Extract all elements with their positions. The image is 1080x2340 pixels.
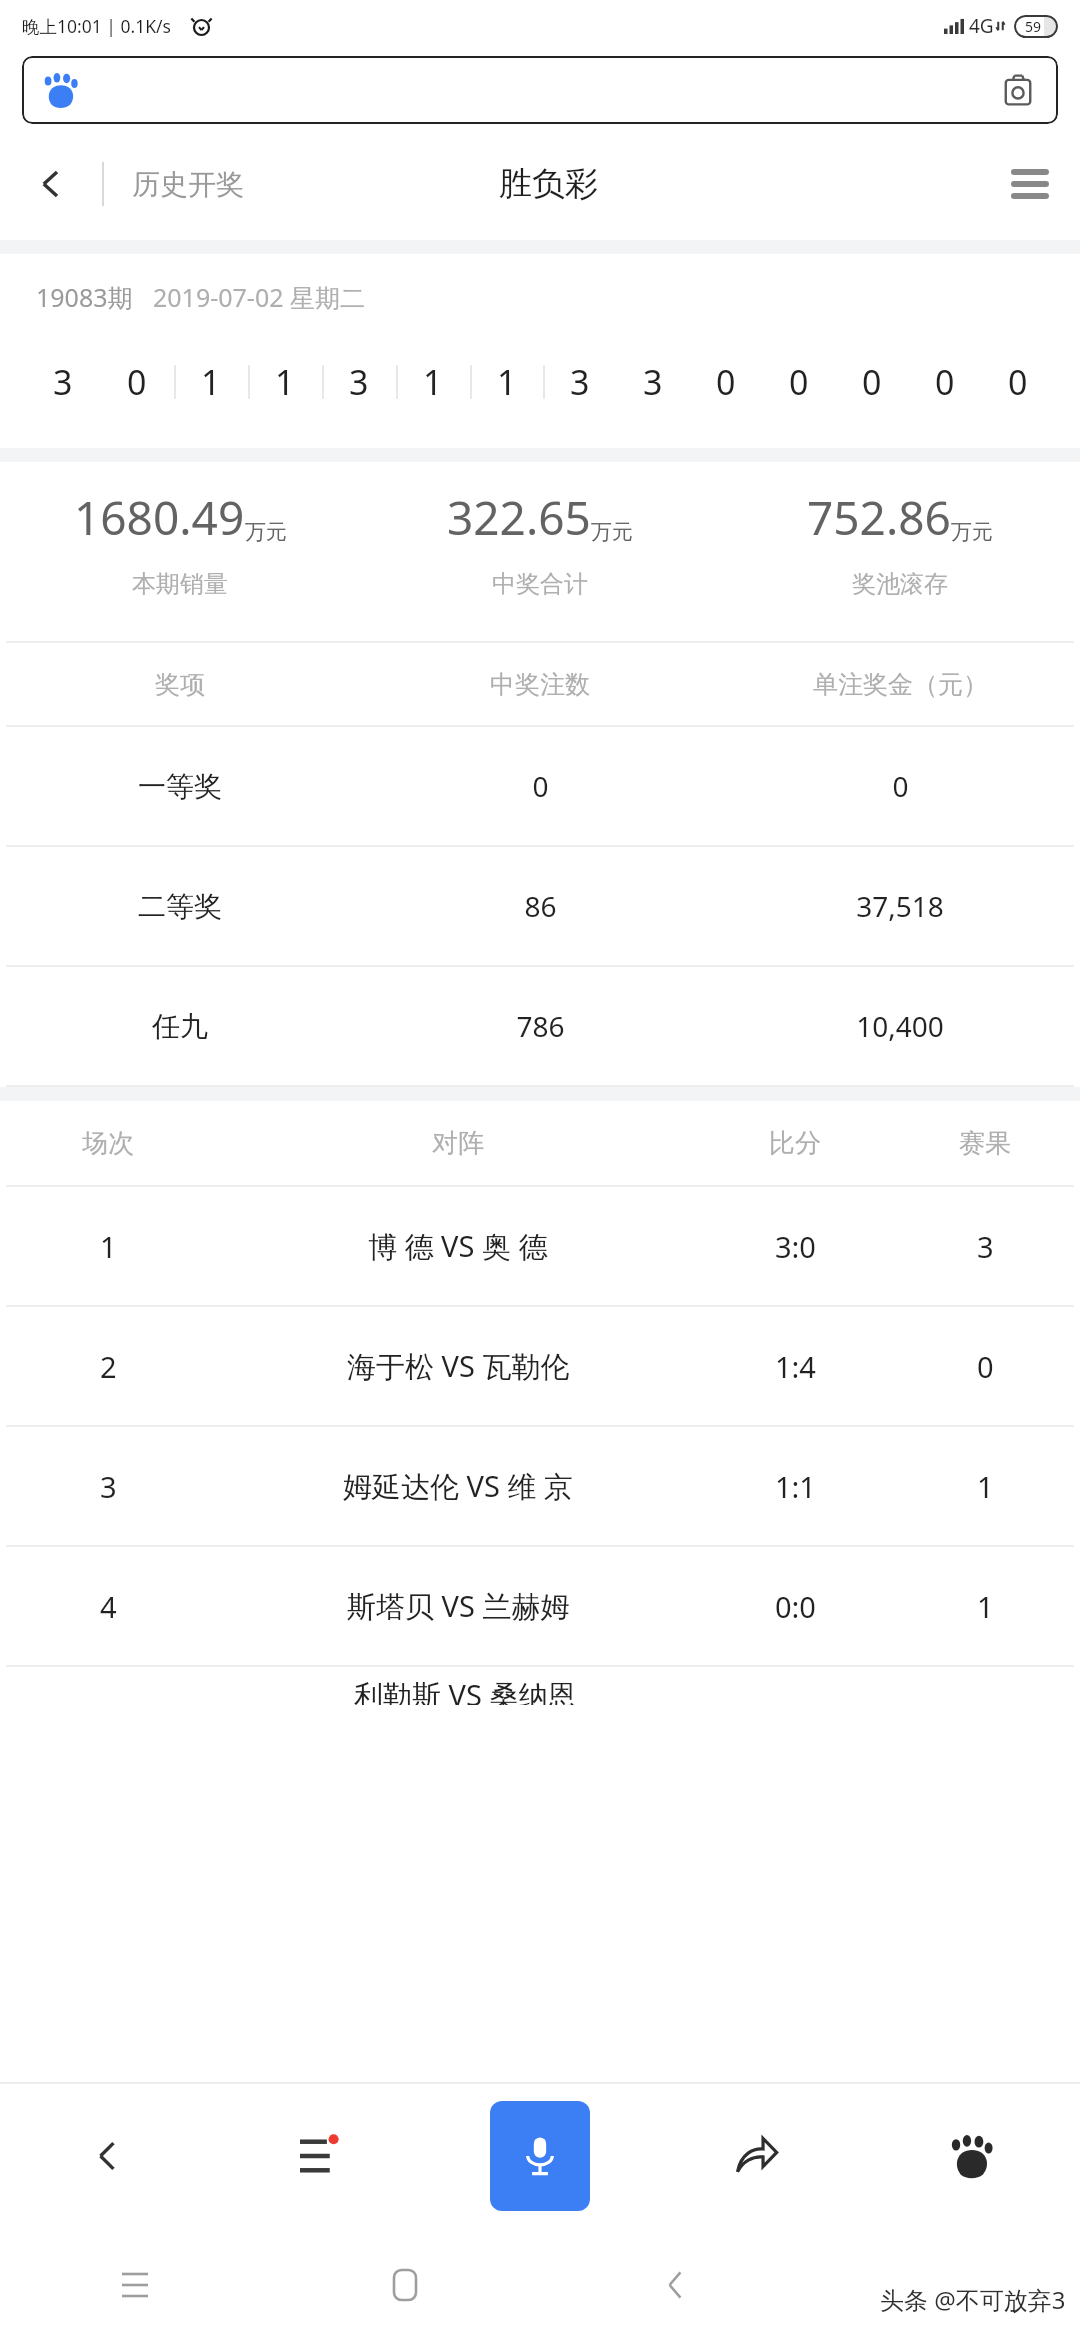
button[interactable]: 322.65 bbox=[360, 486, 720, 599]
button[interactable]: Baidu home bbox=[864, 2082, 1080, 2230]
button[interactable]: Voice search bbox=[490, 2101, 590, 2211]
staticText: 斯塔贝 VS 兰赫姆 bbox=[347, 1586, 570, 1626]
button[interactable]: 任九 bbox=[0, 967, 1080, 1085]
staticText: 胜负彩 bbox=[499, 163, 598, 205]
staticText: 1 bbox=[977, 1467, 994, 1506]
staticText: 1 bbox=[275, 359, 295, 405]
staticText: 万元 bbox=[951, 519, 993, 545]
staticText: 1:4 bbox=[775, 1347, 816, 1386]
staticText: 19083期 bbox=[36, 280, 133, 314]
staticText: 1 bbox=[977, 1587, 994, 1626]
button[interactable]: Share bbox=[648, 2082, 864, 2230]
button[interactable]: 二等奖 bbox=[0, 847, 1080, 965]
staticText: 对阵 bbox=[432, 1127, 484, 1160]
button[interactable]: 1 bbox=[0, 1187, 1080, 1305]
staticText: 752.86 bbox=[807, 486, 951, 549]
button[interactable]: Camera search bbox=[1000, 72, 1036, 108]
staticText: 晚上10:01 | 0.1K/s bbox=[22, 14, 171, 38]
staticText: 利勒斯 VS 桑纳恩 bbox=[354, 1675, 577, 1705]
staticText: 姆延达伦 VS 维 京 bbox=[343, 1466, 573, 1506]
button[interactable]: Back bbox=[0, 2082, 216, 2230]
staticText: 0 bbox=[716, 359, 736, 405]
staticText: 2 bbox=[100, 1347, 117, 1386]
staticText: 万元 bbox=[591, 519, 633, 545]
staticText: 3 bbox=[570, 359, 590, 405]
staticText: 一等奖 bbox=[138, 769, 222, 804]
button[interactable]: Camera search bbox=[22, 56, 1058, 124]
staticText: 37,518 bbox=[856, 887, 944, 925]
staticText: 3 bbox=[977, 1227, 994, 1266]
button[interactable]: 场次 bbox=[0, 1101, 1080, 1185]
staticText: 比分 bbox=[769, 1127, 821, 1160]
staticText: 0 bbox=[789, 359, 809, 405]
staticText: 86 bbox=[524, 887, 557, 925]
staticText: 0 bbox=[935, 359, 955, 405]
button[interactable]: Back bbox=[540, 2230, 810, 2340]
staticText: 0 bbox=[892, 767, 909, 805]
staticText: 0:0 bbox=[775, 1587, 816, 1626]
staticText: 4 bbox=[100, 1587, 117, 1626]
staticText: 786 bbox=[516, 1007, 565, 1045]
button[interactable]: Back bbox=[22, 155, 80, 213]
staticText: 0 bbox=[862, 359, 882, 405]
button[interactable]: 4 bbox=[0, 1547, 1080, 1665]
staticText: 4G bbox=[969, 13, 994, 39]
staticText: 1 bbox=[100, 1227, 117, 1266]
staticText: 1 bbox=[423, 359, 443, 405]
button[interactable]: 2 bbox=[0, 1307, 1080, 1425]
staticText: 二等奖 bbox=[138, 889, 222, 924]
button[interactable]: 1680.49 bbox=[0, 486, 360, 599]
button[interactable]: Menu bbox=[1000, 154, 1060, 214]
staticText: 万元 bbox=[245, 519, 287, 545]
staticText: 中奖注数 bbox=[490, 669, 590, 700]
staticText: 1:1 bbox=[775, 1467, 816, 1506]
staticText: 1 bbox=[497, 359, 517, 405]
staticText: 3 bbox=[349, 359, 369, 405]
staticText: 3 bbox=[100, 1467, 117, 1506]
staticText: 头条 @不可放弃3 bbox=[880, 2283, 1066, 2316]
staticText: 1 bbox=[201, 359, 221, 405]
staticText: 海于松 VS 瓦勒伦 bbox=[347, 1346, 570, 1386]
staticText: 3 bbox=[53, 359, 73, 405]
staticText: 0 bbox=[1008, 359, 1028, 405]
staticText: 任九 bbox=[152, 1009, 208, 1044]
button[interactable]: 一等奖 bbox=[0, 727, 1080, 845]
button[interactable]: 752.86 bbox=[720, 486, 1080, 599]
staticText: 322.65 bbox=[447, 486, 591, 549]
staticText: 本期销量 bbox=[132, 569, 228, 599]
button[interactable]: 奖项 bbox=[0, 643, 1080, 725]
button[interactable]: Menu bbox=[216, 2082, 432, 2230]
staticText: 1680.49 bbox=[74, 486, 245, 549]
staticText: 0 bbox=[977, 1347, 994, 1386]
button[interactable]: Home bbox=[270, 2230, 540, 2340]
staticText: 单注奖金（元） bbox=[813, 669, 988, 700]
staticText: 场次 bbox=[82, 1127, 134, 1160]
staticText: 59 bbox=[1025, 17, 1042, 36]
staticText: 0 bbox=[532, 767, 549, 805]
staticText: 中奖合计 bbox=[492, 569, 588, 599]
staticText: 博 德 VS 奥 德 bbox=[368, 1226, 548, 1266]
staticText: 赛果 bbox=[959, 1127, 1011, 1160]
button[interactable]: 3 bbox=[0, 1427, 1080, 1545]
button[interactable]: 历史开奖 bbox=[132, 167, 244, 202]
staticText: 2019-07-02 星期二 bbox=[153, 280, 366, 314]
staticText: 奖池滚存 bbox=[852, 569, 948, 599]
staticText: 0 bbox=[127, 359, 147, 405]
staticText: 3 bbox=[643, 359, 663, 405]
staticText: 10,400 bbox=[856, 1007, 944, 1045]
staticText: 3:0 bbox=[775, 1227, 816, 1266]
staticText: 奖项 bbox=[155, 669, 205, 700]
button[interactable]: Recents bbox=[0, 2230, 270, 2340]
